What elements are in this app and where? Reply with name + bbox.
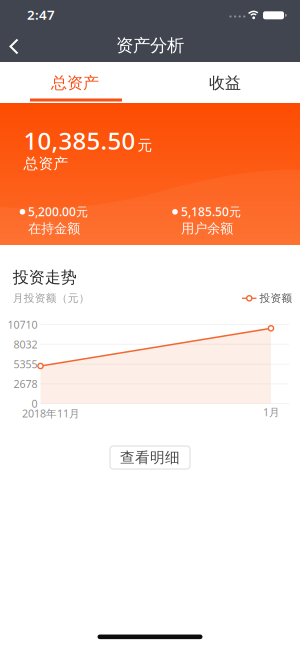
button[interactable]: 查看明细 bbox=[110, 446, 190, 469]
staticText: 10710 bbox=[7, 317, 37, 332]
staticText: 元 bbox=[137, 136, 152, 154]
staticText: 月投资额（元） bbox=[13, 292, 90, 305]
staticText: 2018年11月 bbox=[22, 406, 80, 420]
staticText: 2678 bbox=[13, 377, 37, 391]
staticText: 投资额 bbox=[259, 292, 292, 305]
staticText: 5355 bbox=[13, 357, 37, 371]
button[interactable]: 收益 bbox=[150, 62, 300, 103]
staticText: 在持金额 bbox=[28, 220, 80, 237]
staticText: 1月 bbox=[263, 405, 280, 419]
staticText: 投资走势 bbox=[13, 268, 77, 287]
staticText: 资产分析 bbox=[116, 35, 184, 56]
staticText: 8032 bbox=[13, 337, 37, 351]
staticText: 10,385.50 bbox=[23, 125, 135, 156]
button[interactable]: 总资产 bbox=[0, 62, 150, 103]
staticText: 用户余额 bbox=[181, 220, 233, 237]
button[interactable]: Back bbox=[4, 36, 24, 56]
staticText: 5,200.00元 bbox=[28, 203, 88, 219]
staticText: 收益 bbox=[209, 73, 241, 93]
staticText: 5,185.50元 bbox=[181, 203, 241, 219]
staticText: 2:47 bbox=[27, 6, 55, 23]
staticText: 总资产 bbox=[51, 73, 99, 93]
staticText: 总资产 bbox=[23, 155, 68, 173]
staticText: 查看明细 bbox=[120, 448, 180, 466]
staticText: 0 bbox=[31, 396, 37, 411]
